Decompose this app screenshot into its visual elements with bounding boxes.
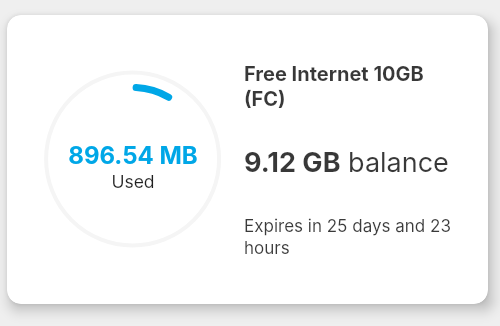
other: Data usage gauge, 896.54 MB used — [7, 15, 488, 304]
staticText: Free Internet 10GB (FC) — [244, 62, 424, 111]
staticText: Used — [111, 171, 155, 192]
staticText: Expires in 25 days and 23 hours — [244, 216, 451, 258]
staticText: 896.54 MB — [68, 141, 198, 170]
staticText: 9.12 GB balance — [244, 146, 449, 179]
button[interactable]: Data usage gauge, 896.54 MB used — [7, 15, 488, 304]
